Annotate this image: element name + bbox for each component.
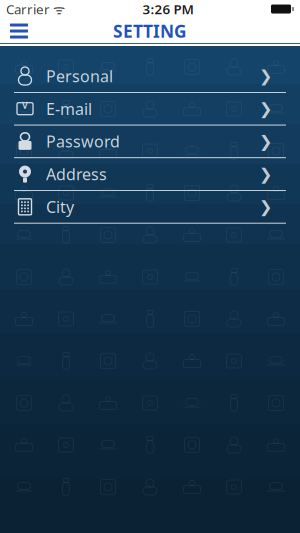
button[interactable]: Address xyxy=(0,158,300,190)
staticText: ❯ xyxy=(259,132,272,150)
button[interactable]: Personal xyxy=(0,60,300,92)
button[interactable]: Menu xyxy=(2,18,36,43)
staticText: ❯ xyxy=(259,165,272,183)
staticText: ᯤ xyxy=(50,0,65,18)
button[interactable]: City xyxy=(0,191,300,223)
staticText: Personal xyxy=(46,65,113,87)
staticText: 3:26 PM xyxy=(142,0,193,18)
staticText: E-mail xyxy=(46,98,92,119)
staticText: ❯ xyxy=(259,67,272,85)
staticText: ❯ xyxy=(259,198,272,216)
button[interactable]: ∨ xyxy=(0,93,300,125)
staticText: Carrier xyxy=(6,0,50,18)
button[interactable]: Password xyxy=(0,125,300,157)
staticText: ❯ xyxy=(259,100,272,118)
staticText: ∨ xyxy=(20,98,29,111)
staticText: City xyxy=(46,196,74,217)
staticText: SETTING xyxy=(113,19,187,42)
staticText: Password xyxy=(46,131,120,152)
staticText: Address xyxy=(46,163,107,185)
